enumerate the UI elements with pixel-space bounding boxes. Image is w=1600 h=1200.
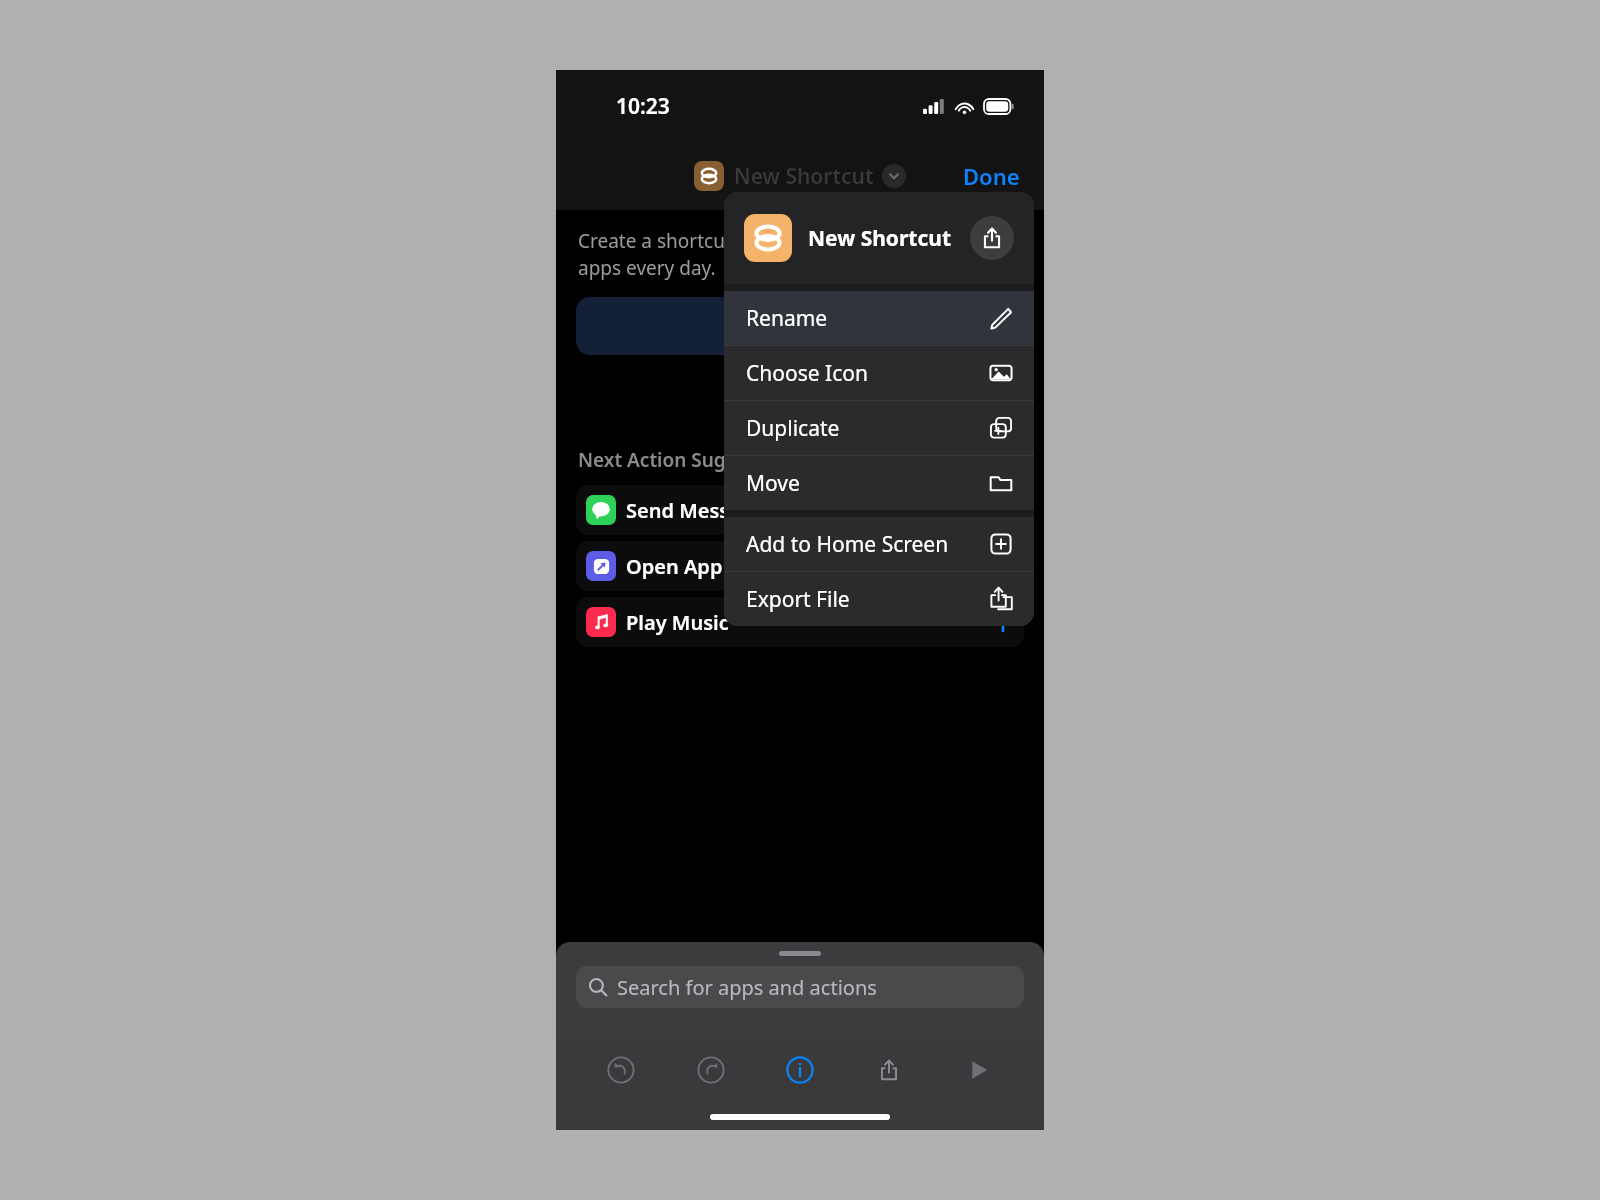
button[interactable]: Add to Home Screen — [724, 517, 1034, 571]
staticText: Open App — [626, 553, 723, 580]
button[interactable]: New Shortcut — [694, 161, 906, 191]
button[interactable]: Open App — [576, 541, 1024, 591]
button[interactable]: Share — [865, 1046, 913, 1094]
staticText: Choose Icon — [746, 359, 868, 388]
staticText: 10:23 — [616, 92, 670, 121]
staticText: Duplicate — [746, 414, 840, 443]
button[interactable]: Undo — [597, 1046, 645, 1094]
button[interactable] — [576, 297, 1024, 355]
button[interactable]: Rename — [724, 291, 1034, 345]
staticText: Move — [746, 469, 800, 498]
staticText: Rename — [746, 304, 828, 333]
button[interactable]: Export File — [724, 572, 1034, 626]
staticText: Add to Home Screen — [746, 530, 949, 559]
button[interactable]: Move — [724, 456, 1034, 510]
button[interactable]: Send Message — [576, 485, 1024, 535]
button[interactable]: Search for apps and actions — [576, 966, 1024, 1008]
staticText: Create a shortcut to get things done in … — [578, 228, 969, 281]
staticText: Send Message — [626, 497, 766, 524]
staticText: New Shortcut — [808, 224, 952, 253]
staticText: Done — [963, 161, 1020, 191]
staticText: Play Music — [626, 609, 729, 636]
button[interactable]: Share — [970, 216, 1014, 260]
staticText: New Shortcut — [734, 162, 874, 191]
button[interactable]: Play Music — [576, 597, 1024, 647]
button[interactable]: Redo — [687, 1046, 735, 1094]
button[interactable]: Play — [955, 1046, 1003, 1094]
staticText: Next Action Suggestions — [578, 447, 805, 473]
staticText: Export File — [746, 585, 850, 614]
button[interactable]: Info — [776, 1046, 824, 1094]
button[interactable]: Duplicate — [724, 401, 1034, 455]
staticText: Search for apps and actions — [617, 974, 877, 1001]
button[interactable]: Choose Icon — [724, 346, 1034, 400]
button[interactable]: Done — [939, 153, 1044, 199]
